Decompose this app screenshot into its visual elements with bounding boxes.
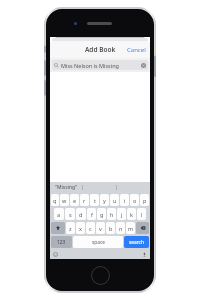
- staticText: b: [109, 225, 113, 232]
- staticText: "Missing": [55, 184, 78, 191]
- button[interactable]: p: [140, 194, 149, 206]
- staticText: search: [129, 239, 144, 246]
- staticText: j: [121, 211, 123, 218]
- button[interactable]: search: [124, 236, 149, 248]
- staticText: Add Book: [85, 45, 116, 54]
- button[interactable]: 123: [51, 236, 72, 248]
- button[interactable]: q: [51, 194, 59, 206]
- staticText: w: [62, 197, 67, 204]
- button[interactable]: f: [87, 208, 96, 220]
- staticText: r: [83, 197, 86, 204]
- button[interactable]: "Missing": [50, 182, 82, 192]
- staticText: h: [110, 211, 114, 218]
- staticText: l: [141, 211, 143, 218]
- staticText: p: [143, 197, 147, 204]
- button[interactable]: Home: [91, 266, 110, 285]
- staticText: s: [69, 211, 72, 218]
- button[interactable]: Cancel: [123, 43, 150, 57]
- staticText: t: [94, 197, 96, 204]
- button[interactable]: t: [90, 194, 99, 206]
- staticText: space: [92, 239, 105, 246]
- staticText: m: [128, 225, 134, 232]
- button[interactable]: w: [60, 194, 69, 206]
- staticText: c: [89, 225, 92, 232]
- staticText: i: [124, 197, 126, 204]
- button[interactable]: k: [127, 208, 136, 220]
- button[interactable]: space: [73, 236, 123, 248]
- staticText: k: [130, 211, 133, 218]
- button[interactable]: s: [65, 208, 75, 220]
- staticText: z: [69, 225, 72, 232]
- button[interactable]: Backspace: [136, 222, 149, 234]
- staticText: e: [73, 197, 77, 204]
- button[interactable]: Miss Nelson is Missing: [52, 60, 148, 70]
- button[interactable]: n: [116, 222, 125, 234]
- button[interactable]: z: [66, 222, 75, 234]
- button[interactable]: Dictation: [141, 251, 148, 258]
- button[interactable]: Emoji keyboard: [52, 251, 59, 258]
- staticText: u: [113, 197, 117, 204]
- button[interactable]: y: [100, 194, 109, 206]
- button[interactable]: m: [126, 222, 135, 234]
- button[interactable]: h: [107, 208, 116, 220]
- staticText: q: [53, 197, 57, 204]
- button[interactable]: c: [86, 222, 95, 234]
- button[interactable]: l: [137, 208, 146, 220]
- button[interactable]: Shift: [51, 222, 65, 234]
- staticText: n: [119, 225, 123, 232]
- staticText: y: [103, 197, 106, 204]
- button[interactable]: u: [110, 194, 119, 206]
- button[interactable]: Clear text: [140, 62, 146, 68]
- button[interactable]: b: [106, 222, 115, 234]
- staticText: x: [79, 225, 82, 232]
- button[interactable]: v: [96, 222, 105, 234]
- button[interactable]: x: [76, 222, 85, 234]
- staticText: g: [100, 211, 104, 218]
- staticText: a: [57, 211, 61, 218]
- staticText: 123: [57, 239, 66, 246]
- staticText: f: [91, 211, 93, 218]
- staticText: o: [133, 197, 137, 204]
- staticText: Miss Nelson is Missing: [61, 62, 140, 69]
- staticText: Cancel: [127, 46, 146, 54]
- button[interactable]: i: [120, 194, 129, 206]
- staticText: v: [99, 225, 102, 232]
- staticText: d: [79, 211, 83, 218]
- button[interactable]: d: [76, 208, 86, 220]
- button[interactable]: e: [70, 194, 79, 206]
- button[interactable]: a: [54, 208, 64, 220]
- button[interactable]: o: [130, 194, 139, 206]
- button[interactable]: j: [117, 208, 126, 220]
- button[interactable]: g: [97, 208, 106, 220]
- button[interactable]: r: [80, 194, 89, 206]
